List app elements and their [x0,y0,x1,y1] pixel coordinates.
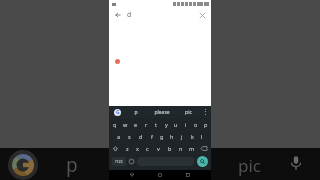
staticText: t [155,121,157,128]
staticText: ?123 [115,159,123,164]
button[interactable]: t [151,118,161,130]
other: Voice search [288,155,304,171]
staticText: l [201,133,203,140]
staticText: i [185,121,187,128]
staticText: s [128,133,131,140]
button[interactable]: k [187,130,197,142]
staticText: p [134,109,138,116]
button[interactable]: b [164,142,175,154]
button[interactable]: n [175,142,186,154]
button[interactable]: Google [109,106,125,118]
button[interactable]: p [201,118,211,130]
button[interactable]: Back [113,10,123,20]
button[interactable]: r [141,118,151,130]
staticText: pic [238,154,262,177]
staticText: r [145,121,148,128]
button[interactable]: More suggestions [199,106,211,118]
button[interactable]: w [120,118,131,130]
button[interactable]: i [181,118,191,130]
staticText: k [191,133,194,140]
button[interactable]: Emoji [126,154,137,168]
staticText: e [134,121,138,128]
staticText: v [157,145,160,152]
staticText: d [127,10,132,20]
button[interactable]: Backspace [197,142,211,154]
staticText: pic [185,109,192,116]
staticText: x [136,145,139,152]
staticText: c [146,145,149,152]
staticText: h [170,133,174,140]
button[interactable]: a [113,130,124,142]
staticText: a [117,133,121,140]
button[interactable]: Back [127,170,137,180]
button[interactable]: h [167,130,177,142]
button[interactable]: x [132,142,142,154]
staticText: f [151,133,153,140]
button[interactable]: u [171,118,181,130]
button[interactable]: p [125,106,147,118]
button[interactable]: Home [155,170,165,180]
staticText: q [113,121,117,128]
button[interactable]: Shift [109,142,122,154]
button[interactable]: f [146,130,157,142]
staticText: w [123,121,128,128]
button[interactable]: y [161,118,171,130]
button[interactable]: d [135,130,146,142]
staticText: o [194,121,198,128]
button[interactable]: Search [197,156,208,167]
button[interactable]: o [191,118,201,130]
staticText: ⋮ [202,108,209,116]
button[interactable]: v [153,142,164,154]
staticText: p [204,121,208,128]
staticText: u [174,121,178,128]
button[interactable]: j [177,130,187,142]
button[interactable]: please [147,106,177,118]
staticText: z [126,145,129,152]
staticText: j [181,133,183,140]
staticText: y [165,121,168,128]
button[interactable]: m [186,142,197,154]
button[interactable]: s [124,130,135,142]
button[interactable]: q [109,118,120,130]
staticText: d [139,133,143,140]
button[interactable]: ?123 [112,157,126,166]
button[interactable]: c [142,142,153,154]
staticText: g [160,133,164,140]
button[interactable]: Clear [197,10,207,20]
staticText: b [168,145,172,152]
button[interactable]: l [197,130,207,142]
staticText: please [154,109,170,116]
staticText: G [116,109,120,116]
staticText: n [179,145,183,152]
button[interactable]: z [122,142,132,154]
button[interactable]: pic [177,106,199,118]
button[interactable]: g [157,130,167,142]
button[interactable]: Recent apps [183,170,193,180]
staticText: m [189,145,195,152]
button[interactable]: e [131,118,141,130]
staticText: p [66,152,78,178]
